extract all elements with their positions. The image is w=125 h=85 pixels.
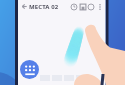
button[interactable]: Apps xyxy=(20,60,39,79)
button[interactable]: Timer xyxy=(69,2,79,12)
button[interactable]: More options xyxy=(95,2,105,12)
button[interactable]: Save xyxy=(78,2,88,12)
button[interactable]: Back xyxy=(20,2,29,11)
staticText: МЕСТА 02 xyxy=(29,3,59,11)
button[interactable]: Refresh xyxy=(86,2,96,12)
